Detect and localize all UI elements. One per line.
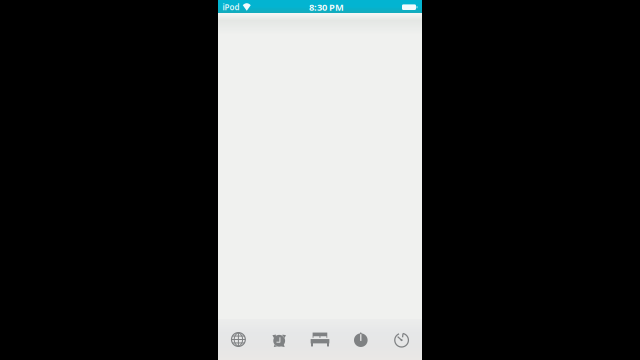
button[interactable]: Stopwatch [340, 319, 381, 360]
button[interactable]: Timer [381, 319, 422, 360]
staticText: iPod [222, 2, 239, 12]
button[interactable]: Alarm [259, 319, 300, 360]
staticText: 8:30 PM [309, 1, 344, 13]
button[interactable]: Bedtime [300, 319, 340, 360]
button[interactable]: World Clock [218, 319, 259, 360]
